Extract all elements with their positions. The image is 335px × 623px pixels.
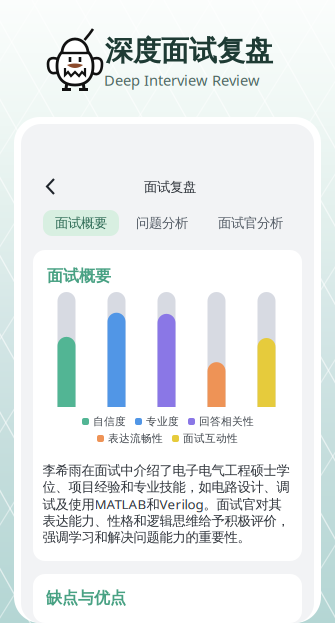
staticText: 深度面试复盘 — [105, 34, 273, 68]
button[interactable]: 面试概要 — [43, 210, 119, 236]
staticText: 缺点与优点 — [46, 588, 126, 608]
staticText: 问题分析 — [136, 215, 188, 231]
staticText: 自信度 — [93, 415, 126, 428]
button[interactable]: Back — [39, 174, 65, 200]
button[interactable]: 面试官分析 — [217, 210, 284, 236]
staticText: 面试互动性 — [183, 432, 238, 445]
staticText: 面试复盘 — [144, 179, 196, 195]
staticText: 面试官分析 — [218, 215, 283, 231]
staticText: Deep Interview Review — [104, 70, 260, 90]
staticText: 李希雨在面试中介绍了电子电气工程硕士学位、项目经验和专业技能，如电路设计、调试及… — [42, 462, 289, 546]
staticText: 回答相关性 — [199, 415, 254, 428]
button[interactable]: 问题分析 — [136, 210, 188, 236]
staticText: 专业度 — [146, 415, 179, 428]
staticText: 面试概要 — [55, 215, 107, 231]
staticText: 面试概要 — [47, 266, 111, 286]
staticText: 表达流畅性 — [108, 432, 163, 445]
